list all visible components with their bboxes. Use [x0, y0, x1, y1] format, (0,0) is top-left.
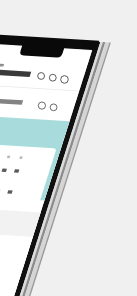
button[interactable]	[0, 0, 137, 296]
